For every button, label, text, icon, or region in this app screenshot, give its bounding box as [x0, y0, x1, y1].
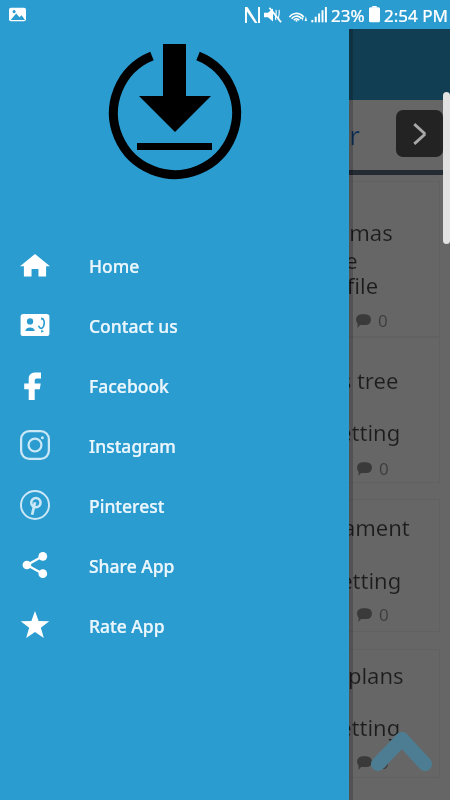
staticText: Merry Christmas — [221, 217, 393, 247]
staticText: 23% — [331, 4, 365, 27]
staticText: 0 — [378, 309, 388, 332]
staticText: Rate App — [89, 614, 165, 638]
staticText: Pinterest — [89, 494, 165, 518]
staticText: Facebook — [89, 374, 169, 398]
button[interactable] — [10, 337, 440, 483]
staticText: Christmas tree — [247, 365, 399, 395]
staticText: wallpaper setting — [221, 712, 401, 742]
staticText: Christmas ornament — [197, 512, 410, 542]
button[interactable]: Share App — [0, 535, 349, 595]
button[interactable]: Contact us — [0, 295, 349, 355]
staticText: 0 — [379, 457, 389, 480]
button[interactable]: Scroll to top — [370, 728, 436, 772]
staticText: Share App — [89, 554, 175, 578]
button[interactable] — [10, 181, 440, 337]
button[interactable]: Home — [0, 235, 349, 295]
button[interactable]: Next — [396, 110, 443, 157]
staticText: 0 — [379, 751, 389, 774]
button[interactable]: Pinterest — [0, 475, 349, 535]
button[interactable]: Instagram — [0, 415, 349, 475]
staticText: Christmas Wallpaper — [116, 118, 360, 152]
button[interactable]: Facebook — [0, 355, 349, 415]
staticText: wallpaper setting — [221, 417, 401, 447]
staticText: 0 — [379, 603, 389, 626]
button[interactable] — [10, 649, 440, 778]
staticText: wallpaper setting — [222, 565, 402, 595]
staticText: Home — [89, 254, 140, 278]
staticText: Instagram — [89, 434, 176, 458]
staticText: 2:54 PM — [384, 4, 448, 27]
staticText: Christmas plans — [238, 660, 404, 690]
staticText: wallpaper free — [209, 245, 358, 275]
button[interactable]: Rate App — [0, 595, 349, 655]
staticText: download file — [239, 270, 379, 300]
button[interactable] — [10, 499, 440, 632]
staticText: Contact us — [89, 314, 178, 338]
